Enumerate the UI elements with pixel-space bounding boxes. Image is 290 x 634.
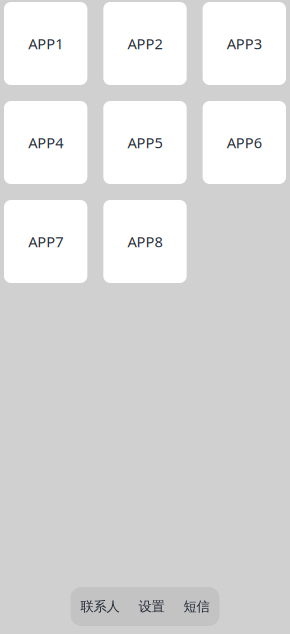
staticText: APP6 [227,133,262,152]
staticText: APP2 [127,34,162,53]
staticText: APP7 [28,232,63,251]
button[interactable]: 短信 [183,587,209,626]
staticText: 联系人 [80,598,119,615]
button[interactable]: 联系人 [80,587,119,626]
staticText: APP3 [227,34,262,53]
staticText: 短信 [183,598,209,615]
staticText: APP5 [127,133,162,152]
staticText: 设置 [138,598,164,615]
staticText: APP8 [127,232,162,251]
staticText: APP1 [28,34,63,53]
button[interactable]: 设置 [138,587,164,626]
button[interactable]: APP4 [4,101,87,184]
button[interactable]: APP7 [4,200,87,283]
button[interactable]: APP8 [103,200,187,283]
button[interactable]: APP1 [4,2,87,85]
button[interactable]: APP6 [203,101,286,184]
staticText: APP4 [28,133,63,152]
button[interactable]: APP2 [103,2,187,85]
button[interactable]: APP5 [103,101,187,184]
button[interactable]: APP3 [203,2,286,85]
